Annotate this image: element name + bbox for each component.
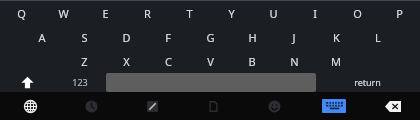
button[interactable]: Shift [10, 72, 44, 92]
button[interactable]: Handwriting [138, 92, 166, 120]
staticText: B [248, 54, 256, 69]
staticText: T [186, 6, 193, 21]
staticText: K [333, 30, 340, 45]
staticText: Y [228, 6, 235, 21]
button[interactable]: Clipboard [199, 92, 227, 120]
button[interactable]: Emoji [260, 92, 288, 120]
staticText: R [144, 6, 151, 21]
staticText: O [353, 6, 362, 21]
button[interactable]: Delete [378, 98, 408, 114]
button[interactable]: N [277, 51, 311, 71]
staticText: C [165, 54, 172, 69]
button[interactable]: M [319, 51, 353, 71]
button[interactable]: T [172, 3, 206, 23]
button[interactable]: G [193, 27, 227, 47]
staticText: F [165, 30, 171, 45]
staticText: U [269, 6, 278, 21]
staticText: 123 [72, 76, 88, 88]
staticText: V [207, 54, 214, 69]
button[interactable]: A [25, 27, 59, 47]
button[interactable]: F [151, 27, 185, 47]
staticText: A [38, 30, 46, 45]
button[interactable]: Z [67, 51, 101, 71]
staticText: Z [81, 54, 88, 69]
staticText: Q [17, 6, 26, 21]
staticText: E [102, 6, 109, 21]
button[interactable]: I [298, 3, 332, 23]
staticText: M [331, 54, 341, 69]
button[interactable]: B [235, 51, 269, 71]
button[interactable]: X [109, 51, 143, 71]
button[interactable]: H [235, 27, 269, 47]
staticText: J [292, 30, 296, 45]
button[interactable]: E [88, 3, 122, 23]
button[interactable]: C [151, 51, 185, 71]
button[interactable]: Change keyboard [16, 92, 44, 120]
staticText: N [290, 54, 299, 69]
button[interactable]: R [130, 3, 164, 23]
button[interactable]: Keyboard [322, 99, 346, 113]
button[interactable]: Numbers [63, 72, 97, 92]
button[interactable]: U [256, 3, 290, 23]
staticText: L [375, 30, 381, 45]
staticText: D [122, 30, 131, 45]
button[interactable]: Recent [77, 92, 105, 120]
staticText: X [123, 54, 130, 69]
button[interactable]: L [361, 27, 395, 47]
staticText: P [396, 6, 403, 21]
button[interactable]: Return [350, 72, 384, 92]
staticText: H [248, 30, 257, 45]
staticText: return [354, 76, 381, 88]
staticText: I [313, 6, 317, 21]
button[interactable]: O [340, 3, 374, 23]
button[interactable]: K [319, 27, 353, 47]
button[interactable]: S [67, 27, 101, 47]
staticText: S [81, 30, 88, 45]
staticText: G [206, 30, 215, 45]
button[interactable]: D [109, 27, 143, 47]
button[interactable]: P [382, 3, 416, 23]
button[interactable]: V [193, 51, 227, 71]
button[interactable]: J [277, 27, 311, 47]
button[interactable]: Y [214, 3, 248, 23]
staticText: W [58, 6, 69, 21]
button[interactable]: W [46, 3, 80, 23]
button[interactable]: Q [4, 3, 38, 23]
